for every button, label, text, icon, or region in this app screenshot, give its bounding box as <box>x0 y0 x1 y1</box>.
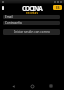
button[interactable]: Iniciar sesión con correo <box>3 29 60 35</box>
staticText: Email <box>5 15 13 19</box>
staticText: Iniciar sesión con correo <box>14 30 50 34</box>
button[interactable]: Home <box>28 82 37 90</box>
button[interactable]: Email <box>3 15 60 19</box>
staticText: recetas <box>26 11 39 15</box>
button[interactable]: ES <box>53 5 62 10</box>
staticText: COCINA <box>22 4 42 13</box>
staticText: Contraseña <box>5 21 22 25</box>
button[interactable]: Contraseña <box>3 21 60 25</box>
button[interactable]: Recent apps <box>46 82 55 90</box>
staticText: ES <box>56 6 60 10</box>
button[interactable]: Menu <box>1 5 5 10</box>
button[interactable]: Back <box>9 82 18 90</box>
